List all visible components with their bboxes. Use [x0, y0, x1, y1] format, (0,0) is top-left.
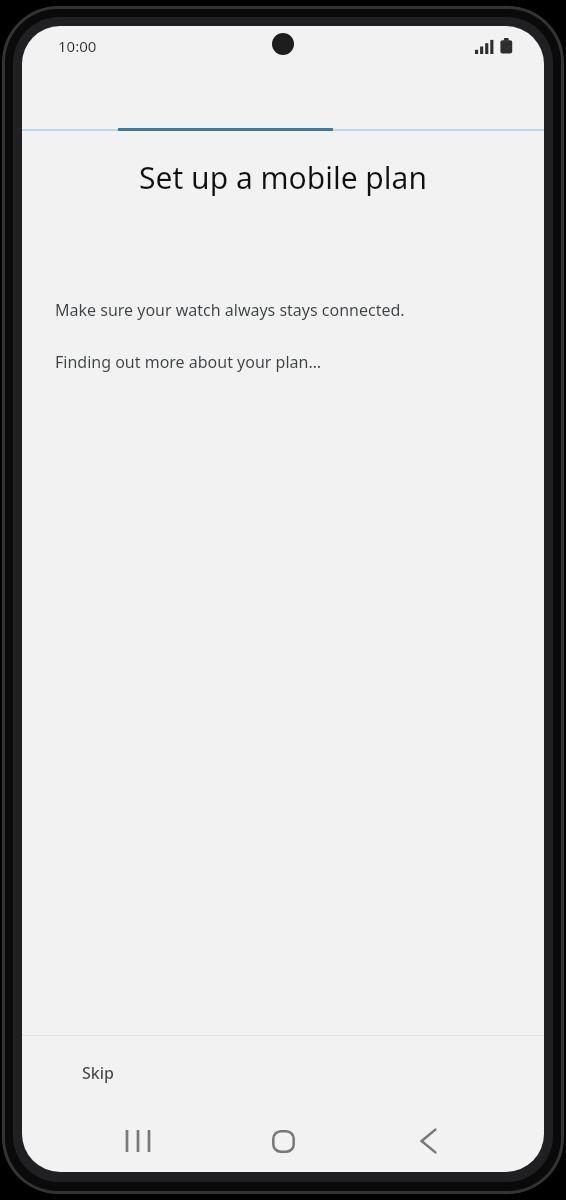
- button[interactable]: Home: [259, 1117, 307, 1165]
- button[interactable]: Skip: [64, 1050, 132, 1096]
- staticText: Make sure your watch always stays connec…: [55, 299, 405, 321]
- button[interactable]: Recent apps: [114, 1117, 162, 1165]
- staticText: Finding out more about your plan…: [55, 351, 322, 373]
- button[interactable]: Back: [404, 1117, 452, 1165]
- staticText: Skip: [82, 1062, 114, 1084]
- staticText: 10:00: [58, 36, 97, 56]
- staticText: Set up a mobile plan: [22, 157, 544, 198]
